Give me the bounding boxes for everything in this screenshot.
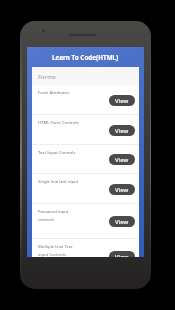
- staticText: Password input controls: [38, 209, 69, 222]
- button[interactable]: HTML Form Controls: [32, 115, 139, 145]
- staticText: Text Input Controls: [38, 150, 76, 156]
- button[interactable]: Text Input Controls: [32, 145, 139, 174]
- staticText: View: [115, 97, 129, 105]
- button[interactable]: View: [109, 154, 135, 165]
- button[interactable]: View: [109, 95, 135, 106]
- staticText: View: [115, 127, 129, 135]
- staticText: Form Attributes: [38, 90, 69, 96]
- staticText: View: [115, 218, 129, 226]
- button[interactable]: Password input controls: [32, 204, 139, 239]
- button[interactable]: Multiple Line Text input Controls: [32, 239, 139, 257]
- staticText: Forms: [38, 73, 56, 81]
- staticText: View: [115, 156, 129, 164]
- button[interactable]: View: [109, 216, 135, 227]
- staticText: Multiple Line Text input Controls: [38, 244, 73, 257]
- staticText: HTML Form Controls: [38, 120, 79, 126]
- button[interactable]: View: [109, 184, 135, 195]
- staticText: Learn To Code(HTML): [52, 53, 119, 62]
- button[interactable]: Form Attributes: [32, 85, 139, 115]
- staticText: View: [115, 253, 129, 257]
- button[interactable]: Single line text input: [32, 174, 139, 204]
- staticText: Single line text input: [38, 179, 79, 185]
- button[interactable]: View: [109, 125, 135, 136]
- button[interactable]: Learn To Code(HTML): [27, 47, 144, 67]
- button[interactable]: View: [109, 251, 135, 257]
- staticText: View: [115, 186, 129, 194]
